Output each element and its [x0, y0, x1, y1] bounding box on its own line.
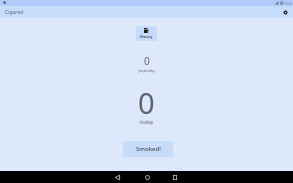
staticText: Smoked!: [136, 145, 161, 153]
button[interactable]: Home: [141, 171, 153, 183]
staticText: 0: [144, 54, 150, 68]
staticText: 1:04: [284, 1, 292, 6]
button[interactable]: Back: [111, 171, 123, 183]
staticText: 0: [138, 83, 155, 122]
staticText: yesterday: [138, 68, 155, 73]
staticText: Cigared: [5, 9, 24, 16]
button[interactable]: Recents: [169, 171, 181, 183]
button[interactable]: Settings: [280, 7, 290, 17]
button[interactable]: Smoked!: [123, 141, 173, 157]
staticText: today: [140, 119, 154, 126]
button[interactable]: History: [136, 26, 157, 41]
staticText: History: [140, 34, 153, 39]
